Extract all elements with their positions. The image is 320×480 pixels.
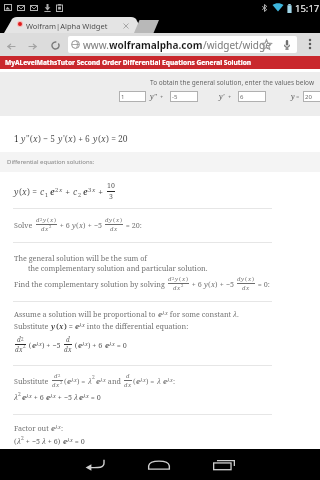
staticText: d	[237, 275, 241, 283]
staticText: d	[126, 372, 130, 380]
button[interactable]: Forward	[24, 38, 40, 54]
staticText: 3	[109, 192, 113, 202]
staticText: λ	[157, 376, 163, 386]
staticText: λ	[88, 376, 92, 386]
staticText: ) + 6	[88, 340, 105, 350]
staticText: λ	[82, 340, 85, 347]
staticText: Assume a solution will be proportional t…	[14, 309, 158, 319]
staticText: e	[105, 340, 109, 350]
staticText: + 6)	[46, 436, 63, 446]
staticText: e	[51, 423, 55, 433]
staticText: y	[241, 275, 245, 283]
button[interactable]: Wolfram|Alpha Widget	[4, 17, 144, 33]
staticText: +	[96, 186, 106, 198]
button[interactable]: Back	[80, 454, 110, 474]
staticText: x	[79, 220, 83, 230]
button[interactable]	[134, 20, 159, 33]
staticText: x	[177, 284, 181, 292]
staticText: y'	[219, 92, 225, 102]
staticText: x	[74, 376, 77, 383]
staticText: '(	[63, 133, 68, 145]
staticText: x	[128, 381, 132, 389]
staticText: the complementary solution and particula…	[28, 263, 208, 273]
button[interactable]: Recent apps	[209, 454, 239, 474]
button[interactable]: Home	[144, 454, 174, 474]
staticText: x	[211, 279, 215, 289]
button[interactable]: More options	[303, 37, 317, 51]
staticText: y	[109, 216, 113, 224]
staticText: x	[59, 186, 63, 194]
staticText: (	[133, 376, 136, 386]
staticText: 10	[107, 181, 115, 191]
staticText: e	[78, 340, 82, 350]
button[interactable]: 1	[119, 91, 146, 102]
staticText: 2	[58, 373, 61, 379]
button[interactable]: Reload	[47, 37, 64, 54]
staticText: (	[98, 133, 101, 145]
button[interactable]: Back	[3, 38, 19, 54]
staticText: 2	[60, 380, 63, 386]
staticText: ) =	[64, 321, 75, 331]
staticText: λ	[79, 321, 82, 328]
staticText: (	[113, 216, 116, 224]
staticText: (	[73, 340, 78, 350]
staticText: Substitute	[14, 376, 51, 386]
staticText: + 6	[58, 220, 72, 230]
staticText: y	[14, 186, 19, 198]
staticText: Solve	[14, 220, 35, 230]
staticText: = 0	[115, 340, 127, 350]
staticText: d	[36, 216, 40, 224]
staticText: y	[43, 216, 47, 224]
button[interactable]: Close tab	[122, 22, 130, 30]
button[interactable]: 20	[303, 91, 320, 102]
staticText: d	[173, 284, 177, 292]
staticText: 2	[78, 191, 82, 198]
staticText: x	[58, 423, 61, 430]
staticText: d	[168, 275, 172, 283]
staticText: Substitute	[14, 321, 51, 331]
staticText: ) =	[27, 186, 40, 198]
staticText: Differential equation solutions:	[7, 158, 95, 166]
button[interactable]: -5	[170, 91, 198, 102]
staticText: ) − 5	[38, 133, 58, 145]
staticText: d	[54, 372, 58, 380]
staticText: .	[237, 309, 239, 319]
staticText: + −5	[218, 279, 236, 289]
staticText: e	[67, 376, 71, 386]
button[interactable]: 6	[238, 91, 266, 102]
staticText: λ	[42, 436, 46, 446]
staticText: (	[19, 186, 22, 198]
staticText: x	[165, 309, 168, 316]
staticText: λ	[74, 392, 78, 402]
staticText: λ	[17, 436, 21, 446]
staticText: d	[41, 225, 45, 233]
staticText: 2	[40, 217, 43, 223]
staticText: x	[29, 392, 32, 399]
staticText: λ	[167, 376, 170, 383]
button[interactable]: www.	[68, 36, 297, 53]
button[interactable]: Bookmark	[260, 38, 273, 51]
staticText: and	[106, 376, 123, 386]
staticText: 15:17	[295, 2, 320, 15]
button[interactable]: Voice search	[279, 37, 294, 52]
staticText: :	[173, 376, 176, 386]
staticText: e	[163, 376, 167, 386]
staticText: d	[64, 345, 68, 354]
staticText: Find the complementary solution by solvi…	[14, 279, 167, 289]
staticText: y''	[150, 92, 157, 102]
staticText: x	[45, 225, 49, 233]
staticText: c	[40, 186, 45, 198]
staticText: e	[79, 392, 83, 402]
staticText: e	[22, 392, 26, 402]
staticText: + 6	[32, 392, 46, 402]
staticText: d	[110, 225, 114, 233]
staticText: c	[73, 186, 78, 198]
staticText: x	[53, 392, 56, 399]
staticText: 2	[49, 224, 52, 230]
staticText: λ	[83, 392, 86, 399]
staticText: = 20:	[124, 220, 142, 230]
staticText: e	[75, 321, 79, 331]
staticText: 2	[92, 374, 95, 381]
staticText: 1	[14, 133, 21, 145]
staticText: +	[63, 186, 73, 198]
